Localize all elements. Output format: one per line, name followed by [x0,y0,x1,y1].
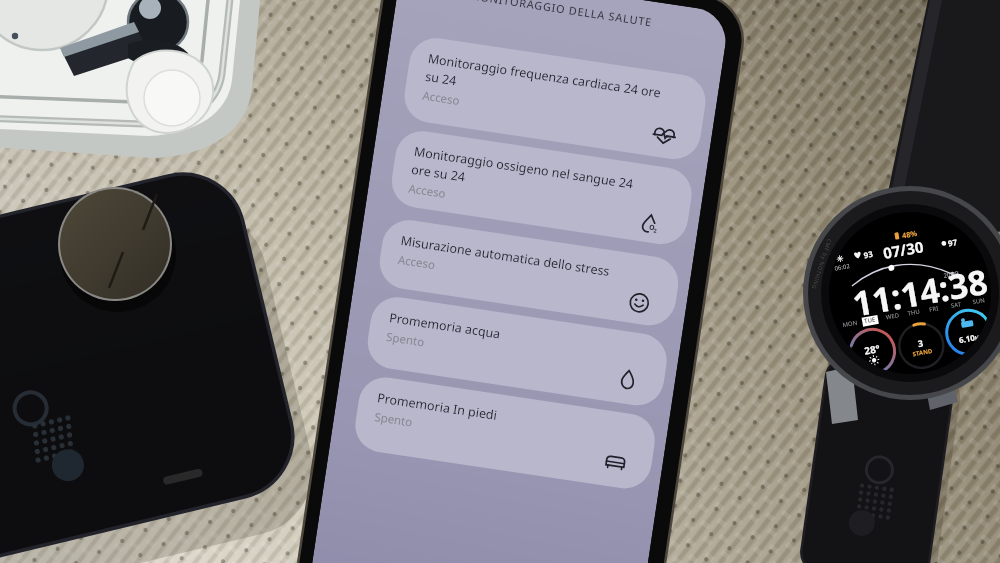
button[interactable]: Promemoria In piedi, Spento [362,372,674,448]
button[interactable]: Monitoraggio frequenza cardiaca 24 ore s… [400,24,700,102]
button[interactable]: Misurazione automatica dello stress, Acc… [382,210,690,282]
button[interactable]: Promemoria acqua, Spento [371,290,681,364]
button[interactable]: Monitoraggio ossigeno nel sangue 24 ore … [391,120,696,200]
